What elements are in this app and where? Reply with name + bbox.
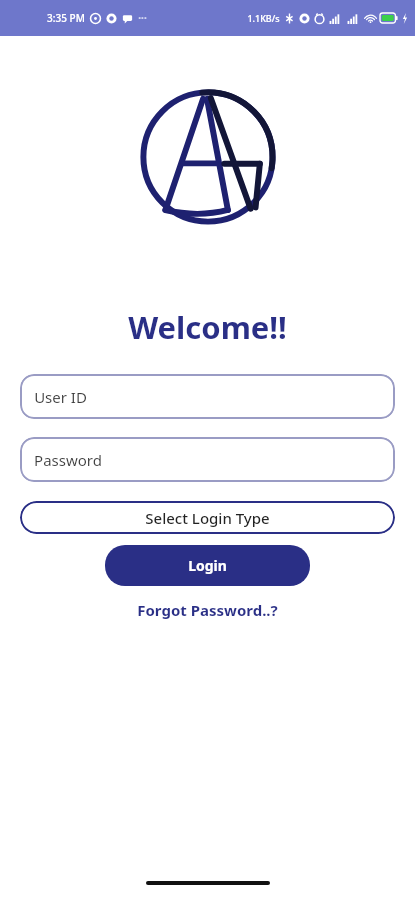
staticText: 1.1KB/s (247, 12, 280, 24)
button[interactable]: Select Login Type (20, 501, 395, 534)
staticText: 3:35 PM (47, 11, 85, 25)
staticText: Welcome!! (128, 306, 287, 348)
staticText: User ID (34, 387, 87, 407)
button[interactable]: User ID (20, 374, 395, 419)
button[interactable]: Password (20, 437, 395, 482)
button[interactable]: Login (105, 545, 310, 586)
button[interactable]: Forgot Password..? (129, 598, 286, 622)
staticText: Select Login Type (145, 508, 270, 528)
staticText: ··· (138, 11, 147, 25)
staticText: Password (34, 450, 102, 470)
staticText: Login (188, 556, 227, 575)
staticText: Forgot Password..? (137, 600, 278, 620)
